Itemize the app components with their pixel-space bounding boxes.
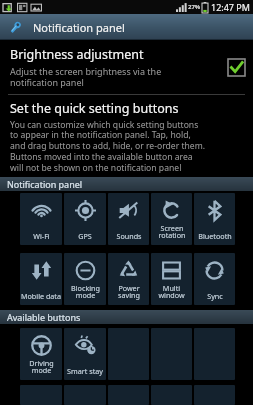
staticText: Available buttons bbox=[7, 311, 81, 323]
button[interactable]: Sounds bbox=[108, 193, 149, 245]
staticText: Smart stay bbox=[67, 366, 103, 376]
staticText: GPS bbox=[78, 231, 92, 241]
staticText: Mobile data bbox=[21, 291, 61, 301]
staticText: 27% bbox=[188, 3, 201, 11]
staticText: You can customize which quick setting bu… bbox=[10, 119, 206, 174]
button[interactable]: Brightness adjustment checkbox bbox=[228, 59, 245, 76]
staticText: Driving mode bbox=[29, 358, 54, 376]
button[interactable]: Bluetooth bbox=[194, 193, 235, 245]
button[interactable]: Driving mode bbox=[20, 328, 62, 380]
staticText: Multi window bbox=[158, 283, 185, 301]
staticText: Sync bbox=[207, 291, 223, 301]
staticText: Blocking mode bbox=[71, 283, 100, 301]
button[interactable]: Sync bbox=[194, 253, 235, 305]
staticText: Bluetooth bbox=[198, 231, 232, 241]
button[interactable]: Power saving bbox=[108, 253, 149, 305]
staticText: Screen rotation bbox=[158, 223, 186, 241]
button[interactable]: Mobile data bbox=[20, 253, 62, 305]
staticText: Adjust the screen brightness via the not… bbox=[10, 65, 162, 88]
button[interactable]: Screen rotation bbox=[151, 193, 192, 245]
staticText: Notification panel bbox=[33, 20, 125, 35]
staticText: Set the quick setting buttons bbox=[10, 100, 179, 117]
staticText: Notification panel bbox=[7, 178, 83, 190]
button[interactable]: Wi-Fi bbox=[20, 193, 62, 245]
staticText: Power saving bbox=[118, 283, 140, 301]
staticText: Sounds bbox=[116, 231, 142, 241]
button[interactable]: Brightness adjustment bbox=[0, 40, 253, 94]
staticText: Wi-Fi bbox=[33, 231, 50, 241]
button[interactable]: Smart stay bbox=[64, 328, 106, 380]
button[interactable]: GPS bbox=[64, 193, 106, 245]
button[interactable]: Multi window bbox=[151, 253, 192, 305]
other: Settings bbox=[8, 20, 23, 35]
staticText: 12:47 PM bbox=[211, 1, 250, 13]
staticText: Brightness adjustment bbox=[10, 46, 144, 63]
button[interactable]: Blocking mode bbox=[64, 253, 106, 305]
